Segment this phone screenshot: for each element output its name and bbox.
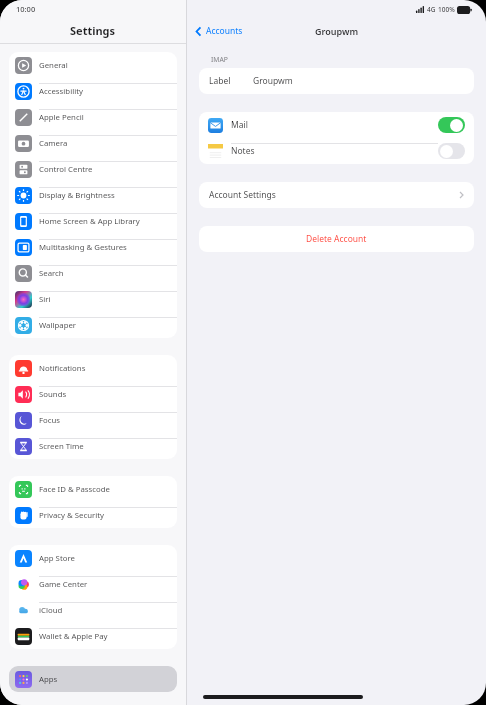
staticText: iCloud xyxy=(39,605,63,616)
staticText: Camera xyxy=(39,138,68,149)
button[interactable]: Wallet & Apple Pay xyxy=(9,623,177,649)
staticText: 10:00 xyxy=(16,4,36,14)
button[interactable]: Privacy & Security xyxy=(9,502,177,528)
button[interactable]: Home Screen & App Library xyxy=(9,208,177,234)
staticText: Mail xyxy=(231,119,248,131)
staticText: Home Screen & App Library xyxy=(39,216,140,227)
button[interactable]: Display & Brightness xyxy=(9,182,177,208)
other: Back xyxy=(195,26,202,37)
button[interactable]: Search xyxy=(9,260,177,286)
staticText: Face ID & Passcode xyxy=(39,484,110,495)
button[interactable]: iCloud xyxy=(9,597,177,623)
staticText: Notifications xyxy=(39,363,86,374)
button[interactable]: Focus xyxy=(9,407,177,433)
button[interactable]: Face ID & Passcode xyxy=(9,476,177,502)
staticText: Accounts xyxy=(206,25,243,37)
staticText: Accessibility xyxy=(39,86,83,97)
button[interactable]: Mail xyxy=(199,112,474,138)
button[interactable]: Siri xyxy=(9,286,177,312)
staticText: IMAP xyxy=(211,55,228,64)
button[interactable]: Label xyxy=(199,68,474,94)
button[interactable]: Screen Time xyxy=(9,433,177,459)
staticText: Wallet & Apple Pay xyxy=(39,631,108,642)
staticText: Control Centre xyxy=(39,164,93,175)
staticText: Sounds xyxy=(39,389,67,400)
button[interactable]: Account Settings xyxy=(199,182,474,208)
button[interactable]: Control Centre xyxy=(9,156,177,182)
button[interactable]: Notes xyxy=(199,138,474,164)
staticText: 4G xyxy=(427,5,436,14)
staticText: Apple Pencil xyxy=(39,112,84,123)
staticText: 100% xyxy=(438,5,455,14)
button[interactable]: Sounds xyxy=(9,381,177,407)
staticText: Groupwm xyxy=(253,75,293,87)
button[interactable]: Multitasking & Gestures xyxy=(9,234,177,260)
button[interactable]: Apps xyxy=(9,666,177,692)
staticText: App Store xyxy=(39,553,75,564)
button[interactable]: Game Center xyxy=(9,571,177,597)
button[interactable]: Apple Pencil xyxy=(9,104,177,130)
staticText: Notes xyxy=(231,145,438,157)
staticText: Display & Brightness xyxy=(39,190,115,201)
staticText: Multitasking & Gestures xyxy=(39,242,127,253)
button[interactable]: General xyxy=(9,52,177,78)
staticText: Game Center xyxy=(39,579,88,590)
button[interactable]: Wallpaper xyxy=(9,312,177,338)
staticText: General xyxy=(39,60,68,71)
staticText: Siri xyxy=(39,294,51,305)
staticText: Screen Time xyxy=(39,441,84,452)
button[interactable]: Accessibility xyxy=(9,78,177,104)
staticText: Privacy & Security xyxy=(39,510,105,521)
button[interactable]: Back xyxy=(195,25,243,37)
staticText: Apps xyxy=(39,674,58,685)
button[interactable]: Notifications xyxy=(9,355,177,381)
staticText: Account Settings xyxy=(209,189,459,201)
staticText: Wallpaper xyxy=(39,320,77,331)
button[interactable]: Toggle off xyxy=(438,143,465,159)
staticText: Delete Account xyxy=(306,233,367,245)
button[interactable]: Toggle on xyxy=(438,117,465,133)
staticText: Settings xyxy=(70,23,116,38)
staticText: Groupwm xyxy=(315,25,359,37)
staticText: Search xyxy=(39,268,64,279)
button[interactable]: Camera xyxy=(9,130,177,156)
staticText: Focus xyxy=(39,415,61,426)
staticText: Label xyxy=(209,75,231,87)
button[interactable]: App Store xyxy=(9,545,177,571)
button[interactable]: Delete Account xyxy=(199,226,474,252)
